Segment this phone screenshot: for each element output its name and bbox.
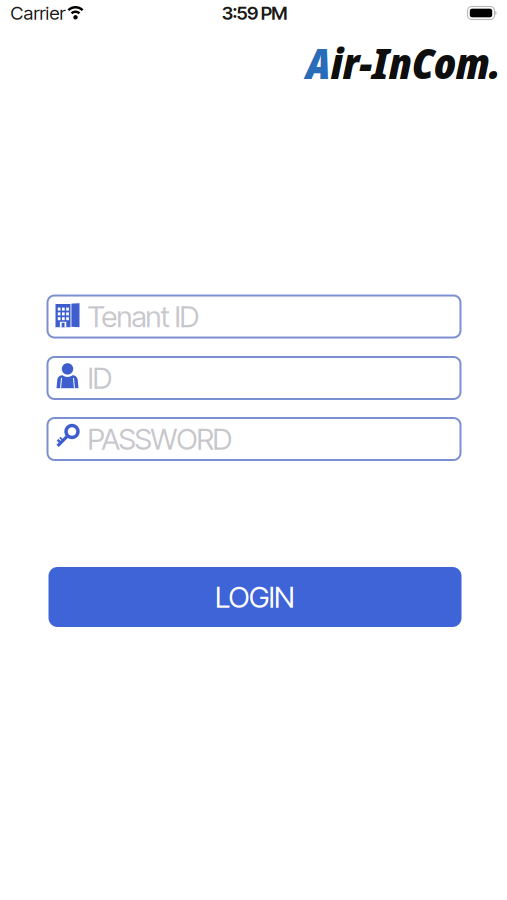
button[interactable]: ID [47,357,460,399]
staticText: PASSWORD [87,421,232,457]
staticText: 3:59 PM [222,2,287,24]
button[interactable]: PASSWORD [47,418,460,460]
staticText: A [306,33,331,91]
staticText: ir-InCom. [331,33,501,91]
staticText: Tenant ID [87,299,199,334]
staticText: Carrier [10,2,65,24]
staticText: ID [87,360,112,396]
staticText: LOGIN [215,579,295,615]
button[interactable]: LOGIN [48,567,461,627]
button[interactable]: Tenant ID [47,295,460,337]
